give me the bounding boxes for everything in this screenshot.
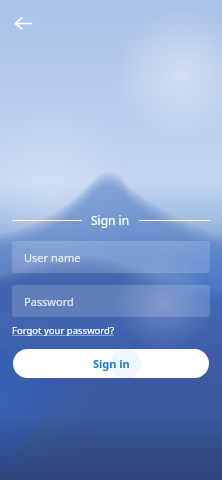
staticText: Sign in: [91, 212, 130, 228]
button[interactable]: User name: [12, 241, 210, 273]
button[interactable]: Forgot your password?: [12, 321, 115, 340]
button[interactable]: Password: [12, 285, 210, 317]
staticText: Password: [24, 294, 74, 309]
button[interactable]: Back: [6, 6, 40, 40]
staticText: Sign in: [93, 356, 130, 371]
staticText: User name: [24, 250, 81, 265]
button[interactable]: Sign in: [13, 349, 209, 378]
staticText: Forgot your password?: [12, 324, 115, 337]
